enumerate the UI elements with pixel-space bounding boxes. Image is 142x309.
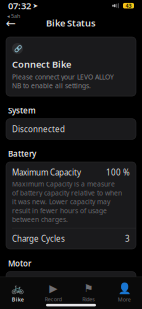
staticText: ▶ [49, 282, 57, 294]
staticText: Connect Bike [12, 58, 71, 70]
staticText: Odometer [12, 277, 51, 287]
staticText: Bike [12, 296, 24, 303]
staticText: Rides [82, 296, 95, 303]
staticText: Maximum Capacity is a measure of battery… [12, 180, 122, 224]
staticText: 43 [125, 2, 131, 9]
button[interactable]: Back [3, 16, 19, 30]
staticText: 100 % [106, 167, 130, 178]
staticText: Motor [8, 258, 31, 269]
staticText: ◂ 5ah [7, 12, 20, 19]
staticText: 🔗 [13, 45, 21, 52]
button[interactable]: 🚲 [0, 281, 35, 304]
staticText: 3 [125, 233, 130, 244]
staticText: 👤 [118, 282, 131, 294]
button[interactable]: 👤 [106, 281, 142, 304]
staticText: Bike Status [46, 17, 96, 29]
staticText: System [8, 105, 36, 116]
staticText: Maximum Capacity [12, 167, 81, 178]
staticText: Charge Cycles [12, 233, 65, 244]
staticText: 07:32 [8, 0, 31, 12]
staticText: ⚑ [84, 282, 94, 294]
staticText: 🚲 [11, 282, 24, 294]
staticText: More [118, 296, 131, 303]
staticText: ➤ [32, 2, 38, 9]
staticText: Battery [8, 148, 36, 159]
staticText: Please connect your LEVO ALLOY NB to ena… [12, 72, 114, 90]
staticText: ← [6, 16, 16, 30]
staticText: 39,9 km [100, 277, 130, 287]
staticText: Record [45, 296, 62, 303]
button[interactable]: ▶ [35, 281, 71, 304]
staticText: Disconnected [12, 124, 65, 134]
button[interactable]: ⚑ [71, 281, 106, 304]
